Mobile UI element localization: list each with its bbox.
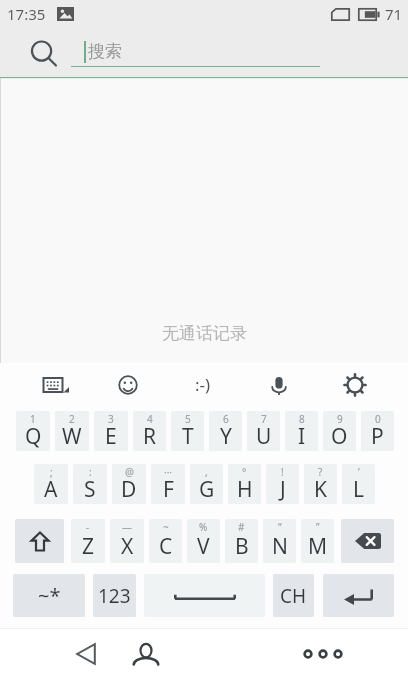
staticText: “ (278, 520, 282, 534)
staticText: 0 (375, 412, 381, 426)
staticText: 6 (223, 412, 229, 426)
staticText: 2 (69, 412, 75, 426)
staticText: P (371, 422, 384, 451)
button[interactable]: Enter (323, 574, 394, 617)
button[interactable]: ’ (342, 464, 375, 504)
staticText: V (197, 532, 210, 561)
button[interactable]: 1 (16, 411, 50, 451)
staticText: ’ (358, 465, 360, 479)
staticText: L (353, 475, 365, 504)
button[interactable]: @ (112, 464, 146, 504)
staticText: W (62, 422, 82, 451)
button[interactable]: “ (263, 519, 296, 563)
button[interactable]: 7 (247, 411, 280, 451)
staticText: 3 (108, 412, 114, 426)
button[interactable]: 3 (94, 411, 128, 451)
staticText: U (256, 422, 272, 451)
button[interactable]: , (190, 464, 223, 504)
button[interactable]: Language (273, 574, 314, 617)
staticText: D (121, 475, 137, 504)
button[interactable]: ; (34, 464, 68, 504)
button[interactable]: Contacts (114, 628, 178, 680)
staticText: H (237, 475, 253, 504)
button[interactable]: ° (228, 464, 261, 504)
button[interactable]: ? (304, 464, 337, 504)
staticText: 搜索 (88, 41, 122, 62)
button[interactable]: 5 (171, 411, 204, 451)
button[interactable]: Recents (291, 628, 355, 680)
button[interactable]: Emoticons (165, 363, 241, 407)
staticText: 9 (337, 412, 343, 426)
staticText: ° (242, 465, 247, 479)
staticText: ; (50, 465, 53, 479)
staticText: 1 (30, 412, 36, 426)
button[interactable]: Shift (15, 519, 64, 563)
staticText: — (122, 520, 132, 534)
staticText: J (280, 475, 286, 504)
staticText: ~ (163, 520, 169, 534)
staticText: ? (318, 465, 323, 479)
staticText: I (298, 422, 306, 451)
staticText: N (272, 532, 288, 561)
staticText: O (331, 422, 348, 451)
staticText: ! (281, 465, 284, 479)
staticText: , (205, 465, 208, 479)
button[interactable]: - (71, 519, 105, 563)
staticText: Y (220, 422, 232, 451)
button[interactable]: 6 (209, 411, 242, 451)
staticText: S (84, 475, 96, 504)
button[interactable]: Settings (317, 363, 393, 407)
staticText: F (163, 475, 174, 504)
staticText: K (314, 475, 327, 504)
button[interactable]: % (187, 519, 220, 563)
button[interactable]: ~ (149, 519, 182, 563)
staticText: E (105, 422, 117, 451)
staticText: 123 (98, 583, 131, 609)
button[interactable]: 0 (361, 411, 394, 451)
button[interactable]: Search (22, 32, 64, 74)
staticText: Q (25, 422, 42, 451)
staticText: @ (125, 465, 134, 479)
staticText: : (89, 465, 92, 479)
staticText: CH (280, 583, 307, 609)
button[interactable]: Symbols (13, 574, 85, 617)
staticText: R (143, 422, 157, 451)
button[interactable]: Backspace (341, 519, 394, 563)
button[interactable]: Back (54, 628, 118, 680)
staticText: :-) (195, 373, 211, 396)
staticText: 8 (299, 412, 305, 426)
staticText: 7 (261, 412, 267, 426)
button[interactable]: 9 (323, 411, 356, 451)
staticText: X (121, 532, 134, 561)
button[interactable]: Numbers (93, 574, 136, 617)
button[interactable]: Space (144, 574, 265, 617)
staticText: 4 (147, 412, 153, 426)
button[interactable]: — (110, 519, 144, 563)
staticText: ” (316, 520, 320, 534)
button[interactable]: 搜索 (71, 28, 320, 78)
staticText: 71 (385, 4, 403, 24)
button[interactable]: Keyboard layout (15, 363, 90, 407)
button[interactable]: ! (266, 464, 299, 504)
staticText: - (86, 520, 90, 534)
staticText: ··· (164, 465, 173, 479)
button[interactable]: Voice input (241, 363, 317, 407)
staticText: ~* (38, 582, 61, 609)
button[interactable]: # (225, 519, 258, 563)
button[interactable]: 8 (285, 411, 318, 451)
staticText: B (235, 532, 249, 561)
staticText: # (238, 520, 245, 534)
button[interactable]: Emoji (90, 363, 165, 407)
staticText: % (199, 520, 208, 534)
button[interactable]: 4 (133, 411, 166, 451)
staticText: Z (82, 532, 95, 561)
button[interactable]: 2 (55, 411, 89, 451)
staticText: T (182, 422, 194, 451)
staticText: 5 (185, 412, 191, 426)
button[interactable]: : (73, 464, 107, 504)
staticText: G (199, 475, 215, 504)
button[interactable]: ··· (151, 464, 185, 504)
staticText: A (44, 475, 58, 504)
button[interactable]: ” (301, 519, 334, 563)
staticText: C (159, 532, 173, 561)
